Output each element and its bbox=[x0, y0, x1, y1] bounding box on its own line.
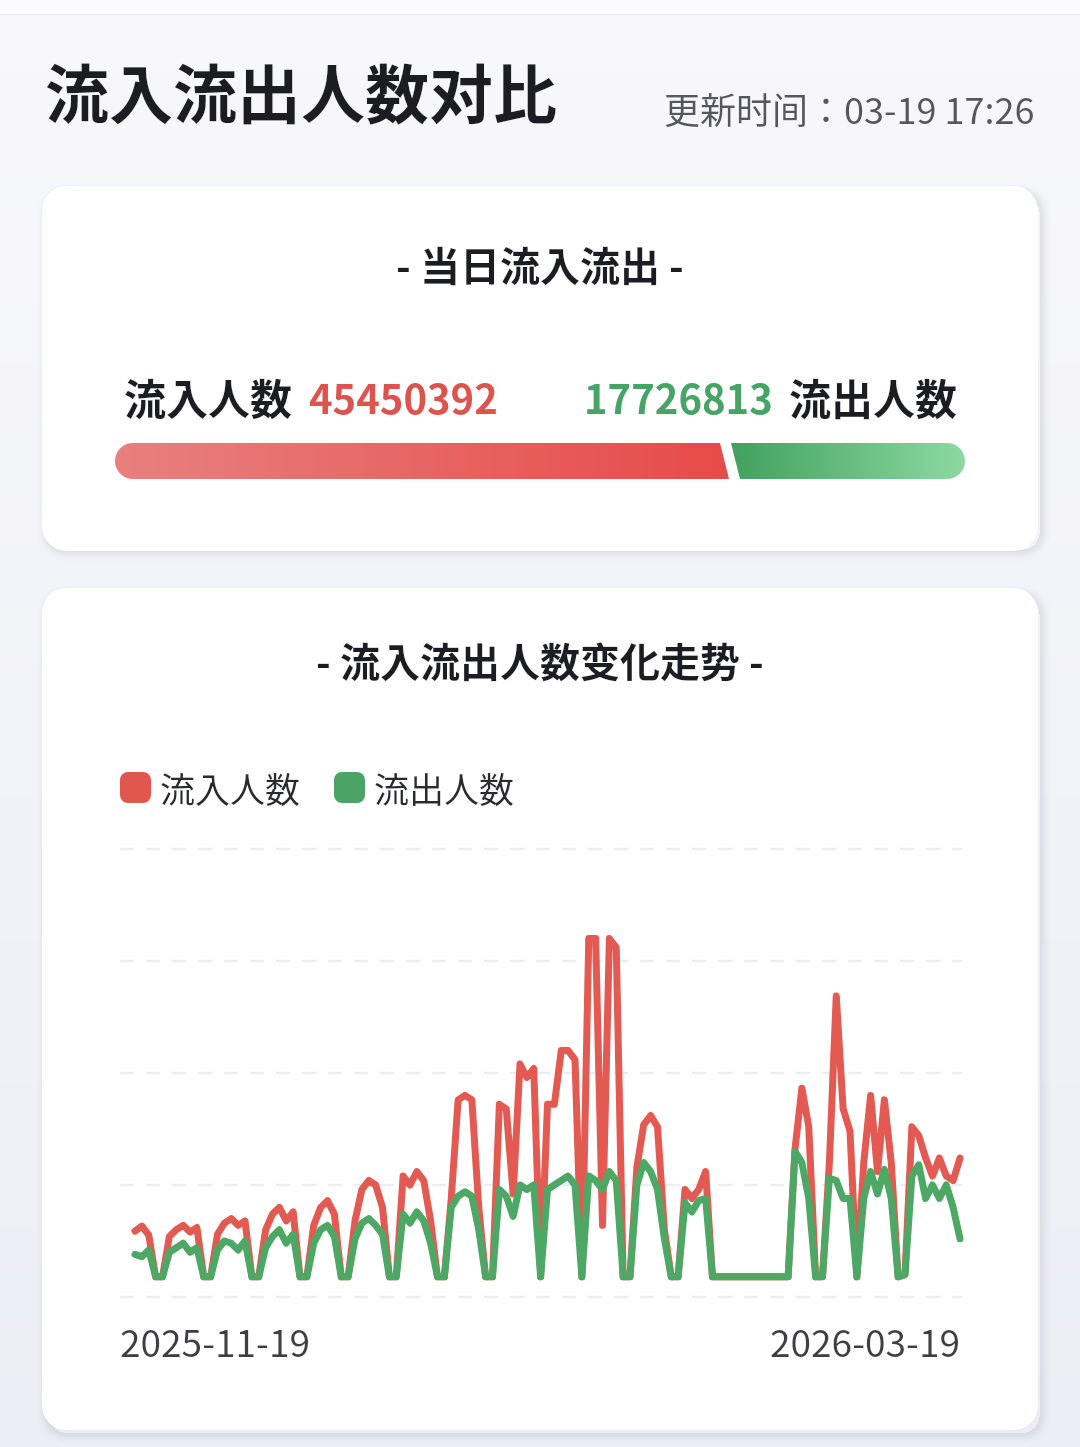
staticText: 45450392 bbox=[309, 368, 498, 426]
staticText: - 流入流出人数变化走势 - bbox=[316, 631, 764, 689]
staticText: 17726813 bbox=[584, 368, 773, 426]
staticText: 流出人数 bbox=[789, 366, 958, 427]
staticText: 2026-03-19 bbox=[770, 1314, 960, 1368]
button[interactable]: - 当日流入流出 - bbox=[42, 186, 1038, 551]
staticText: - 当日流入流出 - bbox=[396, 235, 684, 293]
staticText: 更新时间：03-19 17:26 bbox=[664, 82, 1035, 134]
staticText: 流入人数 bbox=[124, 366, 293, 427]
staticText: 流入流出人数对比 bbox=[45, 44, 557, 137]
button[interactable]: - 流入流出人数变化走势 - bbox=[42, 588, 1038, 1430]
staticText: 流出人数 bbox=[374, 762, 515, 813]
staticText: 流入人数 bbox=[160, 762, 301, 813]
staticText: 2025-11-19 bbox=[120, 1314, 310, 1368]
